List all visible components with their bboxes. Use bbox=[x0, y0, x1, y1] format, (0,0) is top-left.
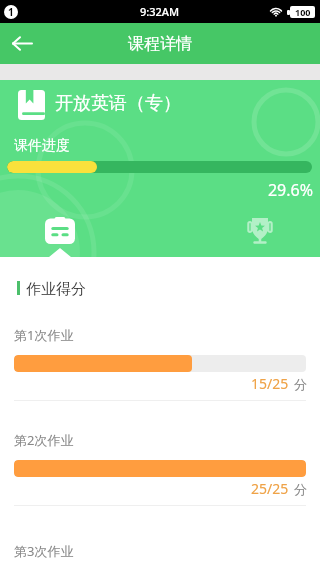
staticText: 15/25 bbox=[251, 374, 289, 393]
button[interactable]: Back bbox=[0, 23, 44, 64]
staticText: 课件进度 bbox=[14, 137, 70, 155]
staticText: 分 bbox=[294, 376, 307, 392]
staticText: 1 bbox=[8, 5, 14, 19]
staticText: 开放英语（专） bbox=[55, 92, 181, 115]
staticText: 第1次作业 bbox=[14, 326, 74, 344]
staticText: 作业得分 bbox=[26, 280, 86, 299]
staticText: 第2次作业 bbox=[14, 431, 74, 449]
staticText: 9:32AM bbox=[140, 4, 180, 19]
staticText: 25/25 bbox=[251, 479, 289, 498]
button[interactable]: Assignments bbox=[30, 208, 90, 252]
staticText: 分 bbox=[294, 481, 307, 497]
staticText: 100 bbox=[295, 6, 311, 18]
staticText: 第3次作业 bbox=[14, 542, 74, 560]
button[interactable]: Achievements bbox=[230, 208, 290, 252]
staticText: 29.6% bbox=[0, 179, 313, 201]
staticText: 课程详情 bbox=[128, 34, 192, 54]
